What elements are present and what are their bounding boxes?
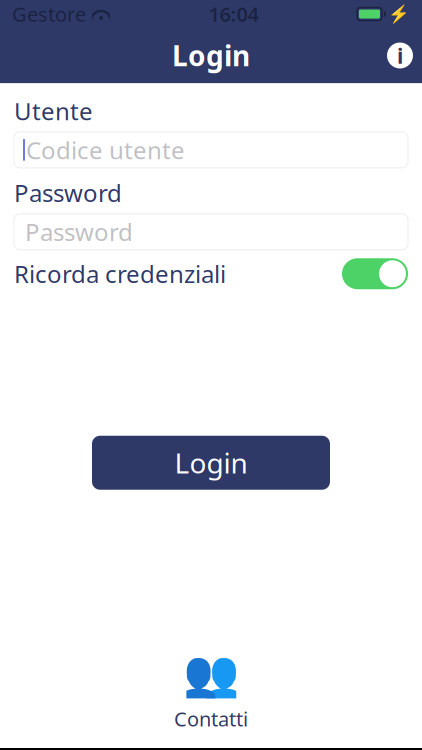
staticText: Codice utente [26,134,185,166]
staticText: ⚡ [388,4,410,24]
staticText: Utente [14,95,93,127]
button[interactable]: Login [92,436,330,490]
staticText: Gestore [12,1,86,27]
button[interactable]: 👥 [156,648,266,732]
staticText: i [397,41,403,70]
staticText: Login [172,37,250,74]
button[interactable]: Ricorda credenziali [14,257,408,291]
staticText: Password [25,216,133,248]
button[interactable]: Informazioni [378,33,422,77]
staticText: Ricorda credenziali [14,258,226,290]
staticText: Login [174,444,247,481]
staticText: Password [14,177,122,209]
staticText: Contatti [174,705,248,732]
staticText: 👥 [183,648,239,699]
staticText: 16:04 [208,1,258,27]
